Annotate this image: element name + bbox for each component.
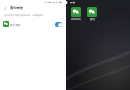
- staticText: 微信通知: [10, 23, 21, 26]
- staticText: 微信: [90, 18, 95, 21]
- button[interactable]: Toggle notifications: [55, 22, 62, 27]
- button[interactable]: Back: [2, 5, 8, 11]
- staticText: 关闭后将不再收到通知消息，请谨慎操作: [4, 14, 44, 17]
- button[interactable]: 应用商店: [71, 7, 81, 21]
- button[interactable]: 微信通知: [0, 19, 66, 29]
- staticText: 通知管理: [10, 6, 23, 10]
- button[interactable]: 微信: [87, 7, 97, 21]
- staticText: 应用商店: [71, 18, 81, 21]
